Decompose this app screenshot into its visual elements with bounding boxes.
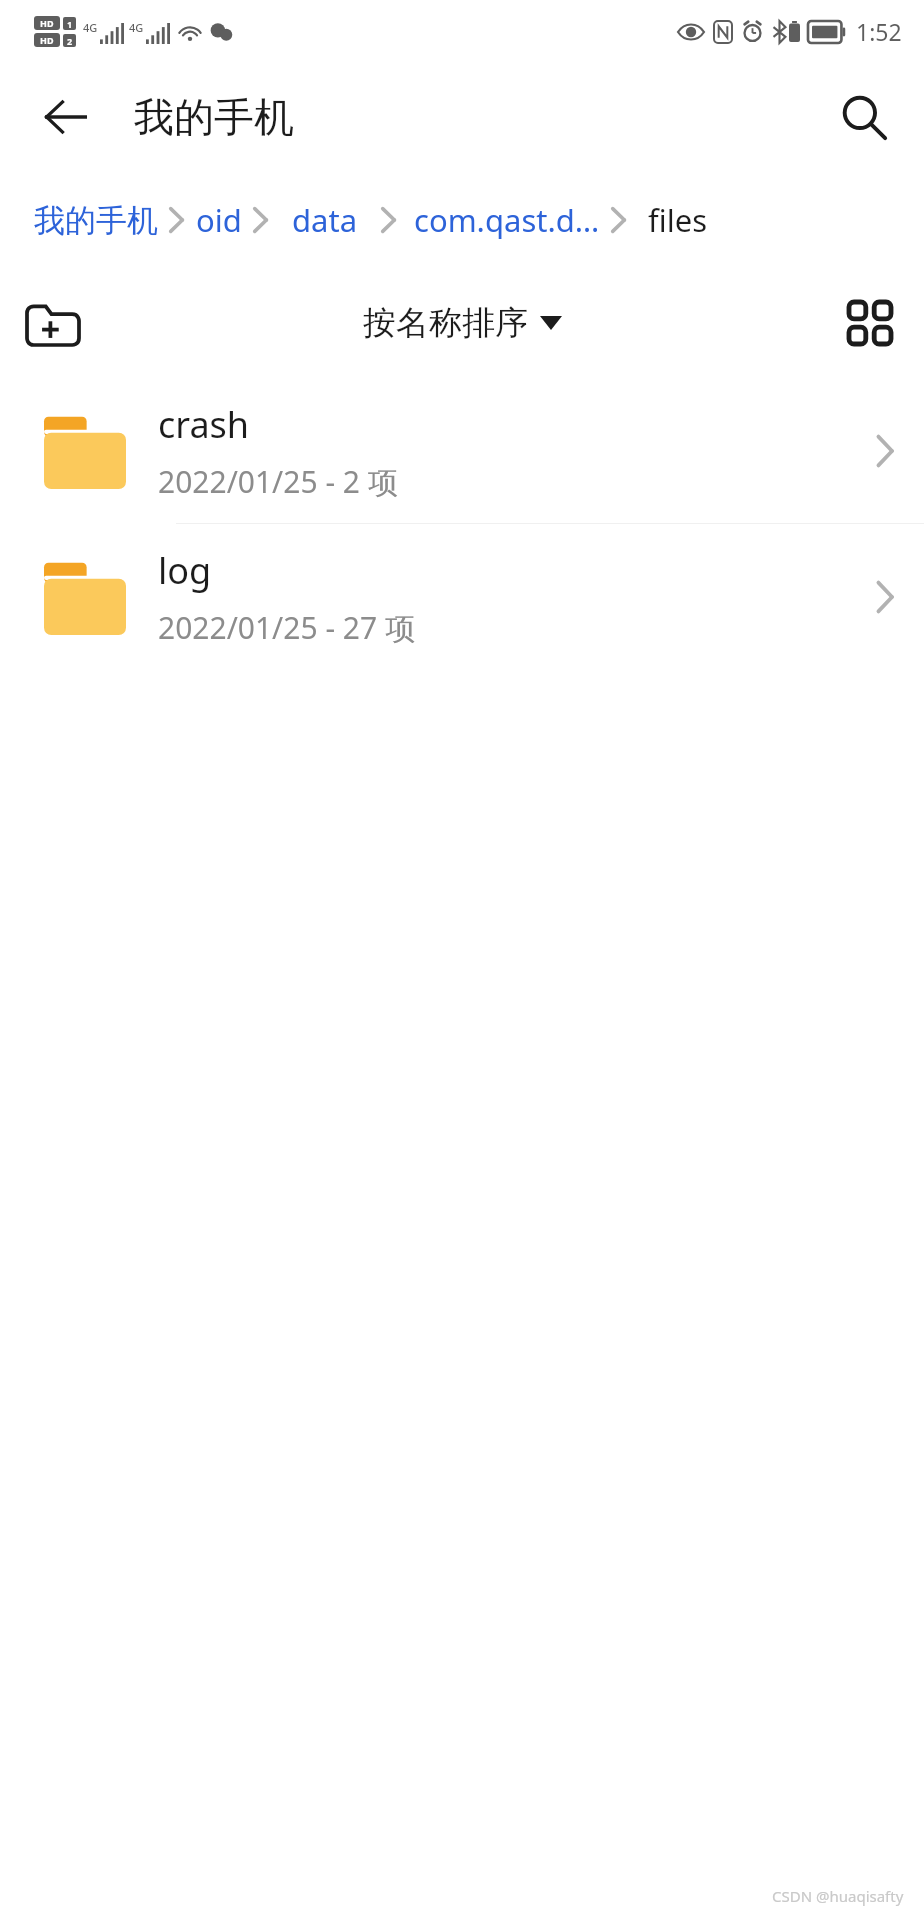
staticText: HD bbox=[40, 34, 54, 46]
staticText: com.qast.d… bbox=[414, 199, 600, 241]
button[interactable]: data bbox=[292, 193, 358, 247]
button[interactable]: oid bbox=[196, 193, 242, 247]
staticText: 2022/01/25 - 27 项 bbox=[158, 607, 415, 648]
staticText: data bbox=[292, 199, 358, 241]
button[interactable]: 我的手机 bbox=[34, 195, 158, 246]
staticText: crash bbox=[158, 400, 250, 449]
staticText: 我的手机 bbox=[34, 201, 158, 240]
staticText: 1:52 bbox=[856, 16, 902, 47]
button[interactable]: Search bbox=[826, 79, 902, 155]
staticText: log bbox=[158, 546, 212, 595]
staticText: 2 bbox=[67, 35, 73, 47]
staticText: 按名称排序 bbox=[363, 302, 528, 344]
staticText: 1 bbox=[67, 18, 73, 30]
staticText: HD bbox=[40, 17, 54, 29]
staticText: files bbox=[648, 199, 707, 241]
button[interactable]: files bbox=[648, 193, 707, 247]
staticText: CSDN @huaqisafty bbox=[772, 1886, 904, 1906]
staticText: oid bbox=[196, 199, 242, 241]
button[interactable]: com.qast.d… bbox=[414, 193, 600, 247]
button[interactable]: Grid view bbox=[834, 287, 906, 359]
button[interactable]: New folder bbox=[18, 288, 88, 358]
button[interactable]: 按名称排序 bbox=[355, 294, 570, 352]
button[interactable]: log bbox=[0, 524, 924, 670]
staticText: 4G bbox=[83, 20, 98, 35]
staticText: 我的手机 bbox=[134, 92, 294, 142]
button[interactable]: Back bbox=[30, 81, 102, 153]
staticText: 2022/01/25 - 2 项 bbox=[158, 461, 398, 502]
staticText: 4G bbox=[129, 20, 144, 35]
button[interactable]: crash bbox=[0, 378, 924, 524]
